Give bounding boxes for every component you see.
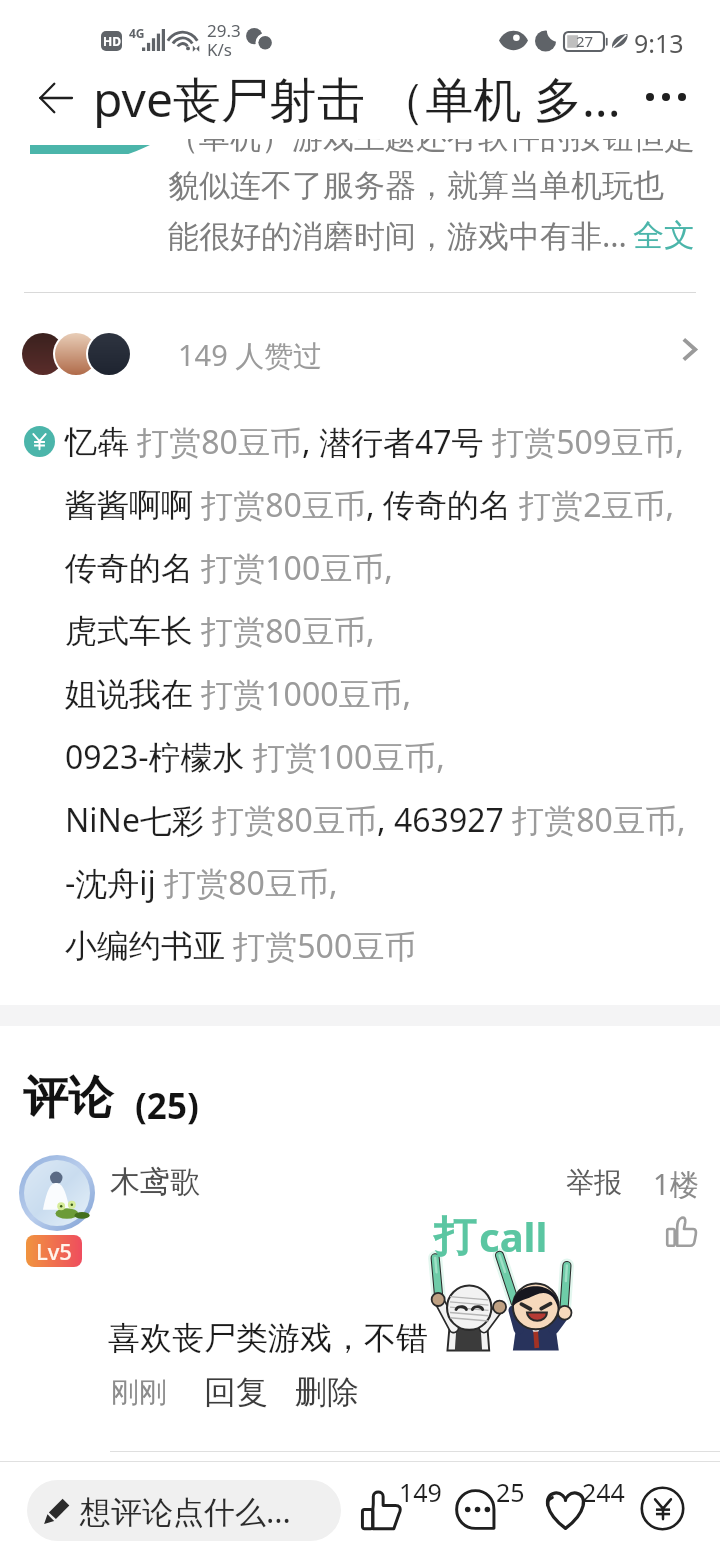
- staticText: 评论: [23, 1070, 113, 1127]
- staticText: 能很好的消磨时间，游戏中有非...: [168, 214, 627, 256]
- staticText: 小编约书亚: [65, 926, 225, 966]
- button[interactable]: More options: [632, 65, 698, 137]
- staticText: 喜欢丧尸类游戏，不错: [108, 1318, 428, 1358]
- staticText: 29.3: [207, 19, 241, 42]
- staticText: NiNe七彩: [65, 798, 204, 842]
- staticText: -沈舟ij: [65, 861, 156, 905]
- button[interactable]: 全文: [633, 216, 695, 255]
- staticText: 0923-柠檬水: [65, 735, 245, 779]
- button[interactable]: 删除: [295, 1372, 359, 1412]
- staticText: 1楼: [653, 1164, 699, 1204]
- staticText: 打赏80豆币: [129, 420, 302, 464]
- staticText: 打赏1000豆币,: [193, 672, 412, 716]
- staticText: 酱酱啊啊: [65, 485, 193, 525]
- staticText: 打赏80豆币,: [156, 861, 338, 905]
- button[interactable]: Reward with coins: [639, 1485, 685, 1531]
- staticText: 刚刚: [111, 1375, 167, 1410]
- staticText: 463927: [394, 798, 504, 842]
- staticText: 打赏509豆币,: [484, 420, 684, 464]
- staticText: 想评论点什么...: [80, 1490, 291, 1532]
- button[interactable]: Action 244: [539, 1475, 623, 1543]
- button[interactable]: 想评论点什么...: [27, 1480, 341, 1541]
- staticText: 27: [576, 31, 594, 50]
- button[interactable]: 149 人赞过: [0, 293, 720, 417]
- button[interactable]: Action 25: [452, 1475, 536, 1543]
- button[interactable]: 木鸢歌: [110, 1163, 200, 1201]
- staticText: 打赏100豆币,: [245, 735, 445, 779]
- button[interactable]: pve丧尸射击 （单机 多...: [93, 66, 621, 132]
- staticText: ,: [366, 483, 383, 527]
- staticText: 貌似连不了服务器，就算当单机玩也: [168, 166, 664, 205]
- staticText: 25: [496, 1475, 525, 1509]
- button[interactable]: 回复: [204, 1372, 268, 1412]
- staticText: Lv5: [36, 1236, 72, 1266]
- staticText: 姐说我在: [65, 674, 193, 714]
- staticText: 打赏80豆币: [204, 798, 377, 842]
- button[interactable]: Back: [25, 65, 93, 137]
- button[interactable]: 举报: [566, 1165, 622, 1200]
- button[interactable]: Action 149: [358, 1475, 442, 1543]
- staticText: 打赏500豆币: [225, 924, 417, 968]
- staticText: 9:13: [634, 26, 684, 60]
- staticText: ,: [377, 798, 394, 842]
- staticText: 打赏100豆币,: [193, 546, 393, 590]
- staticText: 打: [434, 1211, 476, 1264]
- staticText: 打赏80豆币: [193, 483, 366, 527]
- staticText: 244: [582, 1475, 625, 1509]
- staticText: 打赏2豆币,: [511, 483, 675, 527]
- staticText: 149 人赞过: [178, 335, 323, 375]
- staticText: （单机）游戏主题还有软件的按钮但是: [168, 118, 695, 157]
- staticText: 潜行者47号: [319, 420, 484, 464]
- staticText: 忆犇: [65, 422, 129, 462]
- button[interactable]: Like comment: [656, 1206, 706, 1256]
- staticText: 打赏80豆币,: [504, 798, 686, 842]
- staticText: K/s: [207, 38, 232, 61]
- staticText: 传奇的名: [65, 548, 193, 588]
- staticText: 虎式车长: [65, 611, 193, 651]
- staticText: HD: [103, 33, 121, 49]
- staticText: call: [479, 1209, 548, 1263]
- staticText: 打赏80豆币,: [193, 609, 375, 653]
- staticText: 4G: [129, 25, 145, 41]
- staticText: (25): [135, 1082, 199, 1130]
- staticText: 传奇的名: [383, 485, 511, 525]
- staticText: 149: [399, 1475, 442, 1509]
- staticText: ,: [302, 420, 319, 464]
